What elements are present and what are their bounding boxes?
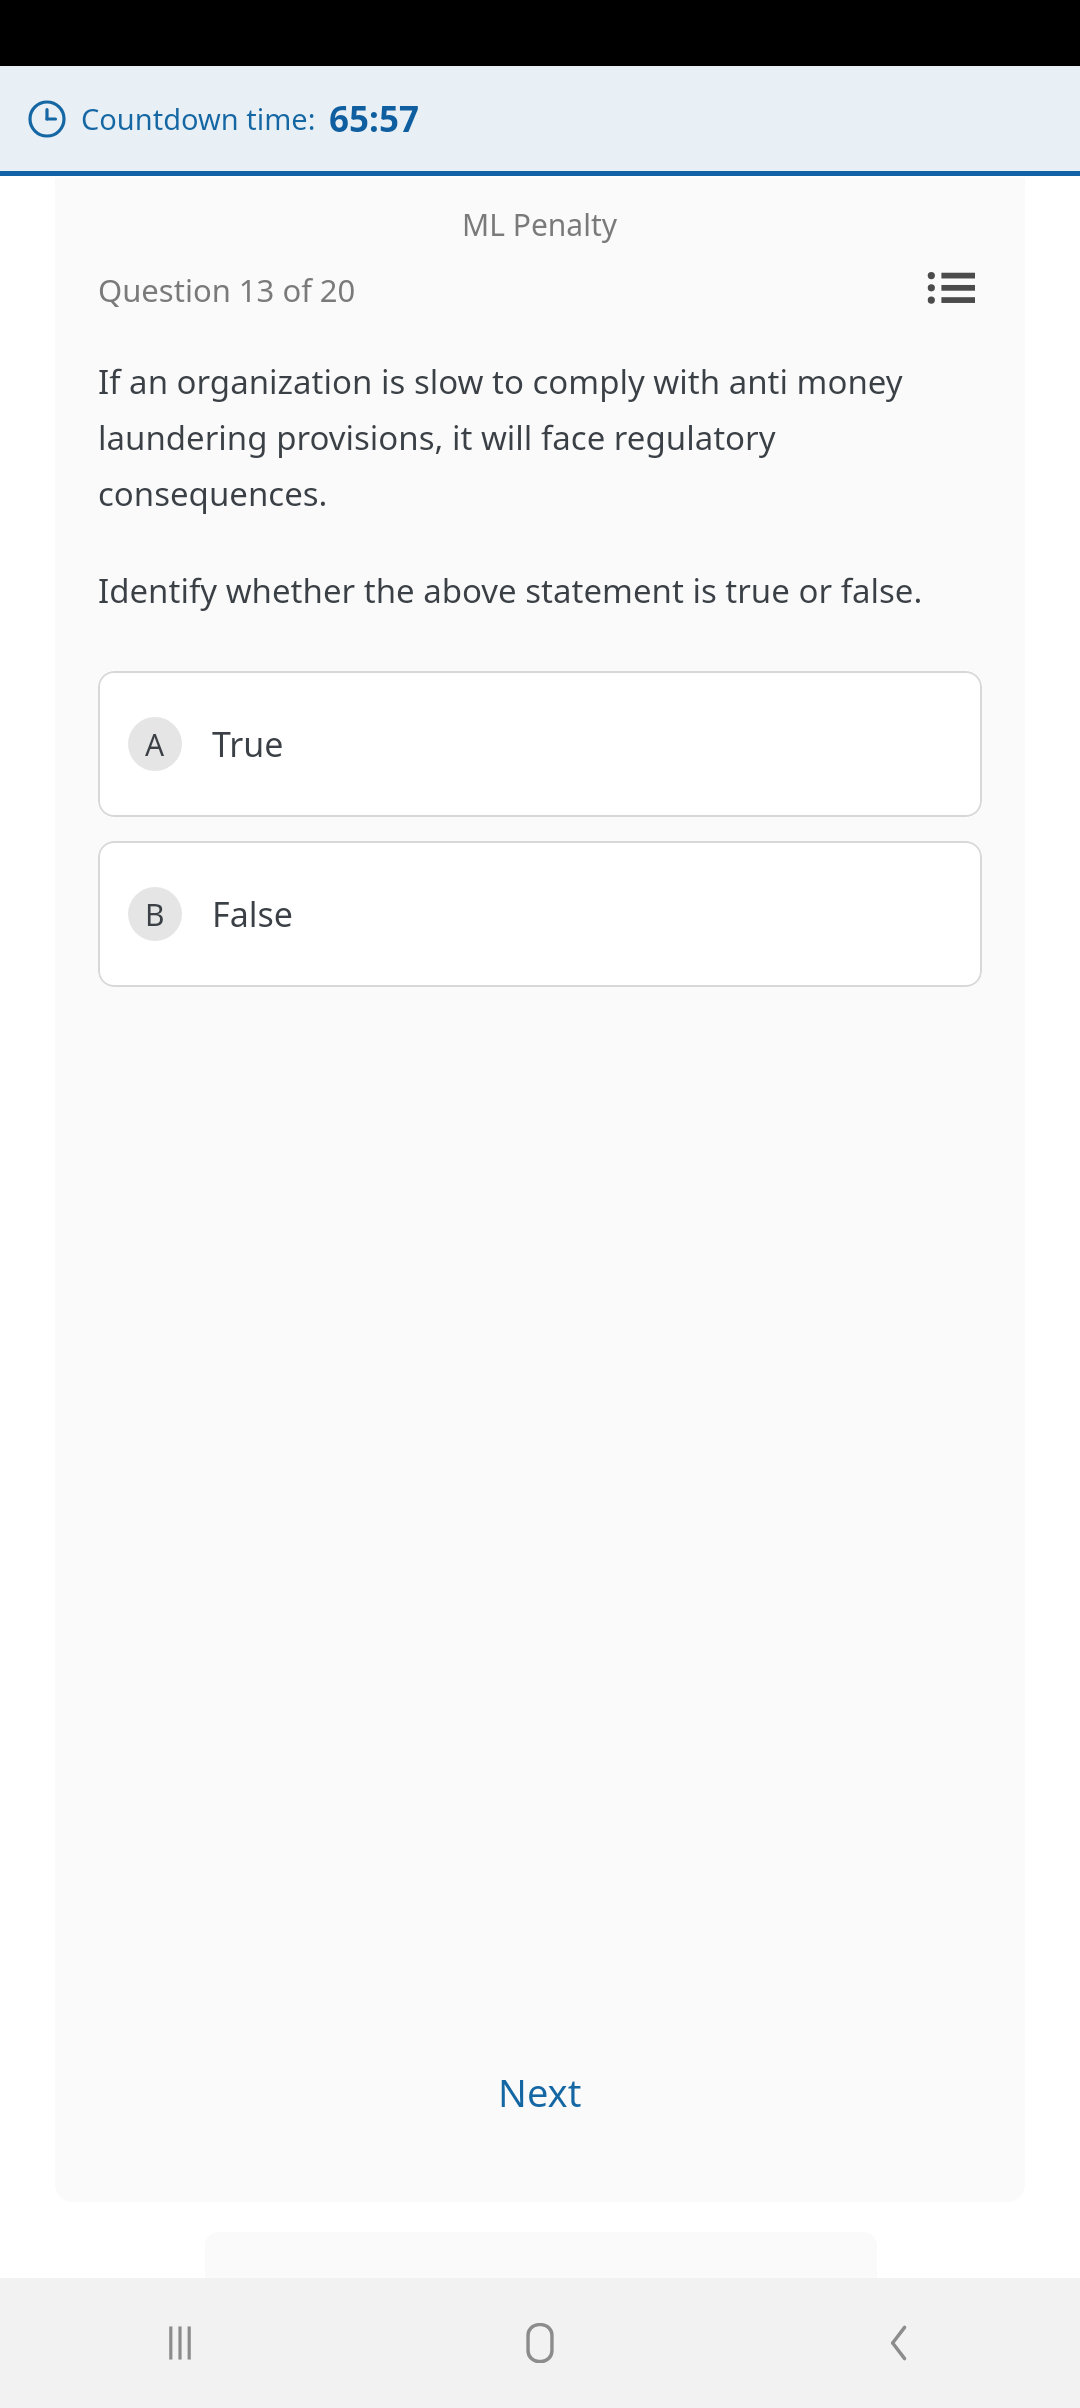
staticText: Identify whether the above statement is … (98, 568, 923, 613)
staticText: Countdown time: (81, 99, 316, 138)
staticText: If an organization is slow to comply wit… (98, 359, 997, 516)
button[interactable]: Next (55, 2012, 1025, 2172)
staticText: 65:57 (329, 95, 419, 143)
staticText: ML Penalty (462, 204, 618, 245)
button[interactable]: Question list (922, 261, 980, 319)
button[interactable]: B (98, 841, 982, 987)
staticText: B (145, 894, 165, 935)
staticText: False (212, 891, 293, 937)
button[interactable]: Back (720, 2278, 1080, 2408)
button[interactable]: A (98, 671, 982, 817)
staticText: Question 13 of 20 (98, 269, 356, 311)
staticText: True (212, 721, 284, 767)
staticText: A (145, 724, 165, 765)
staticText: Next (498, 2066, 582, 2118)
button[interactable]: Recent apps (0, 2278, 360, 2408)
button[interactable]: Home (360, 2278, 720, 2408)
